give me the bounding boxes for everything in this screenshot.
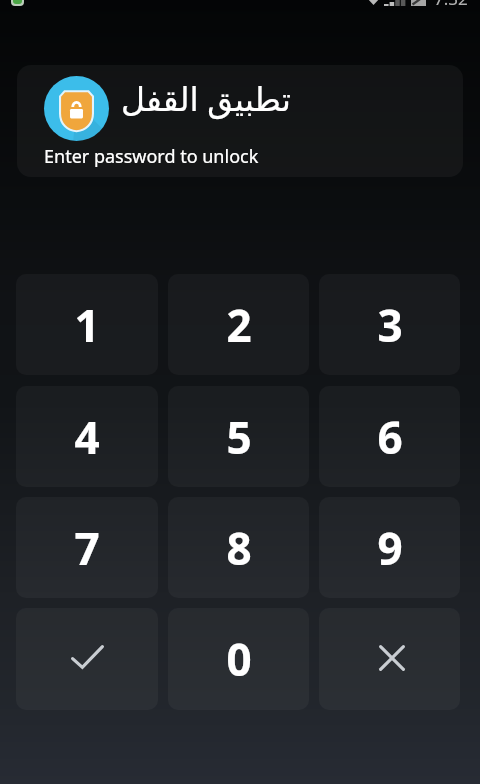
staticText: Enter password to unlock (44, 144, 259, 169)
button[interactable]: 3 (319, 274, 460, 375)
button[interactable]: 1 (16, 274, 158, 375)
staticText: 5 (226, 407, 252, 467)
button[interactable]: 2 (168, 274, 309, 375)
staticText: 1 (74, 295, 100, 355)
staticText: 8 (226, 518, 252, 578)
staticText: 9 (377, 518, 403, 578)
button[interactable]: 4 (16, 386, 158, 487)
staticText: تطبيق القفل (121, 76, 291, 121)
button[interactable]: 5 (168, 386, 309, 487)
button[interactable]: 0 (168, 608, 309, 710)
button[interactable]: تطبيق القفل (17, 65, 463, 177)
button[interactable]: 9 (319, 497, 460, 598)
button[interactable]: 7 (16, 497, 158, 598)
button[interactable]: 8 (168, 497, 309, 598)
staticText: 3 (377, 295, 403, 355)
staticText: 7:32 (434, 0, 468, 10)
button[interactable]: 6 (319, 386, 460, 487)
staticText: 7 (74, 518, 100, 578)
button[interactable]: Delete (319, 608, 460, 710)
staticText: 2 (226, 295, 252, 355)
staticText: 0 (226, 629, 252, 689)
button[interactable]: Confirm (16, 608, 158, 710)
staticText: 6 (377, 407, 403, 467)
staticText: 4 (74, 407, 100, 467)
